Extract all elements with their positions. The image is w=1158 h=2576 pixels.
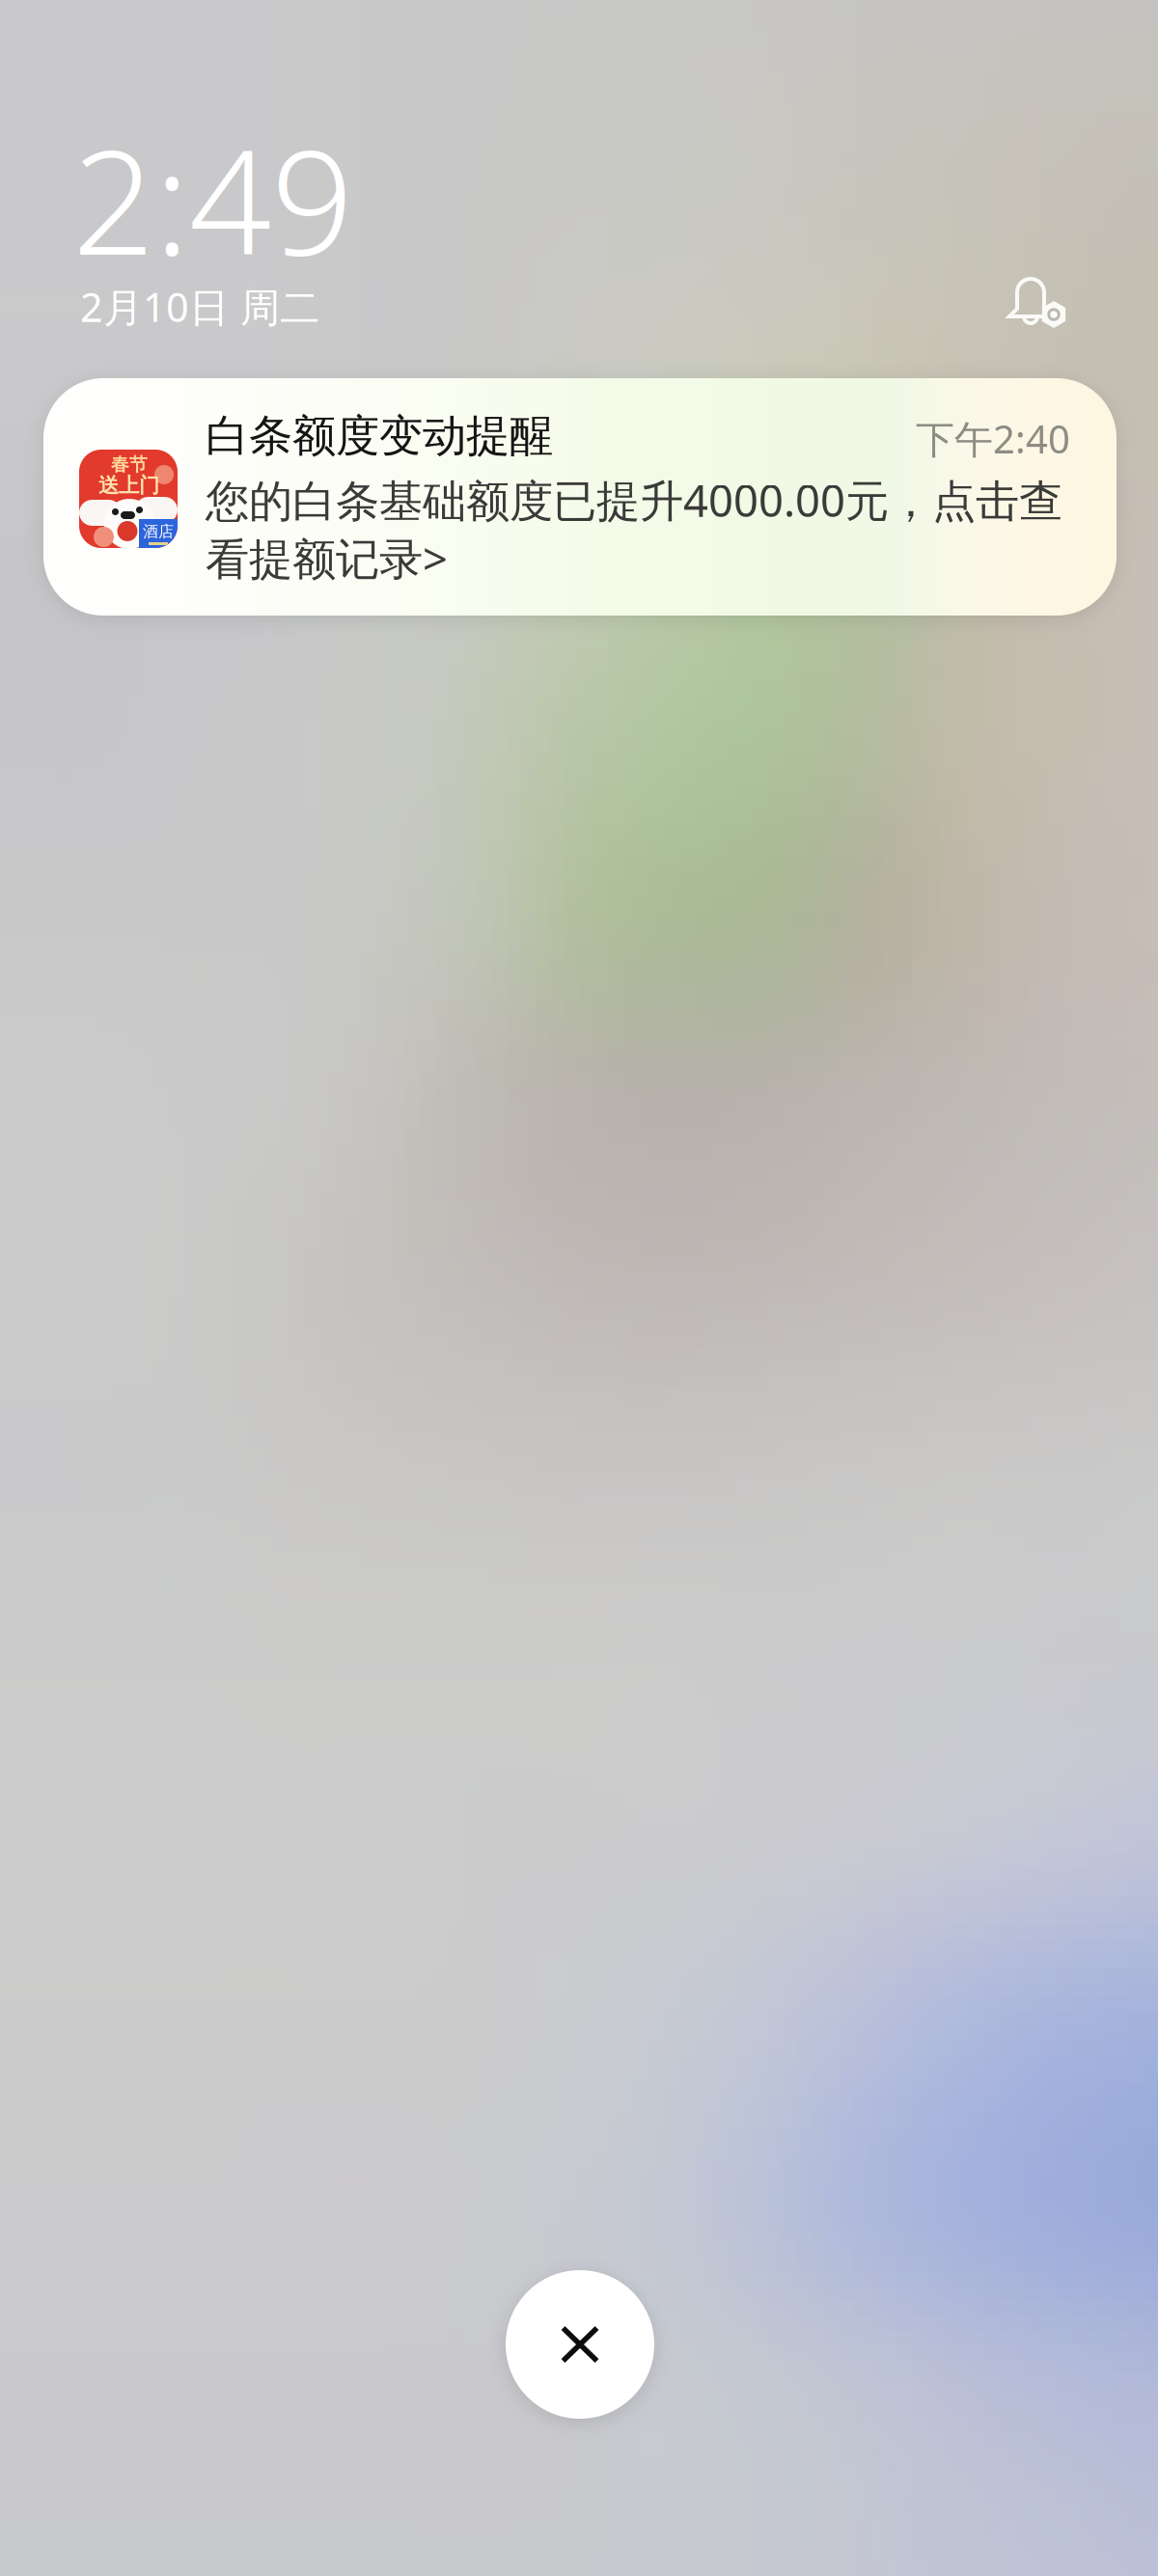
staticText: 2:49 (72, 103, 353, 295)
staticText: 春节 (111, 453, 148, 476)
staticText: 酒店 (143, 522, 174, 541)
button[interactable]: Notification settings (1009, 276, 1071, 332)
button[interactable]: Clear all notifications (506, 2270, 654, 2419)
button[interactable]: 春节 (43, 378, 1117, 616)
staticText: 下午2:40 (916, 413, 1070, 464)
staticText: 白条额度变动提醒 (206, 409, 553, 463)
staticText: 您的白条基础额度已提升4000.00元，点击查看提额记录> (206, 471, 1062, 587)
staticText: 送上门 (98, 473, 159, 498)
staticText: 2月10日 周二 (80, 280, 319, 333)
